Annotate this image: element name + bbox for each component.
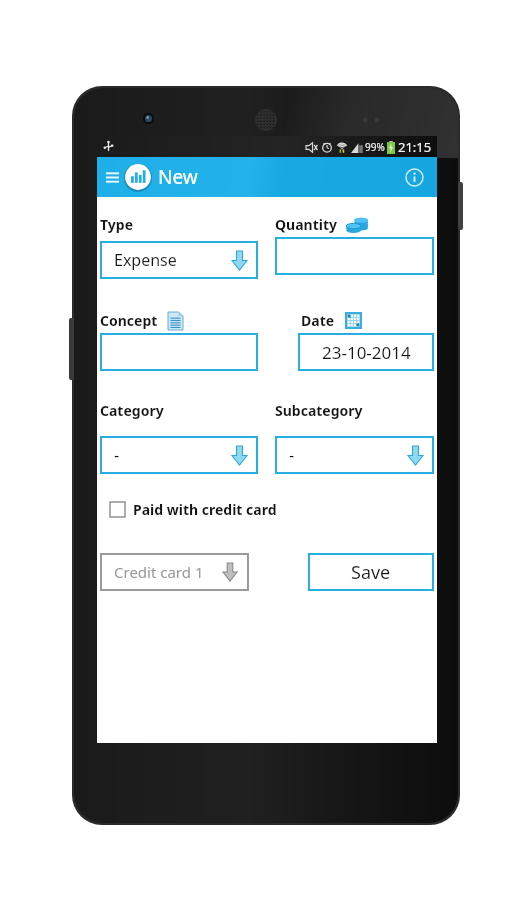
staticText: Subcategory (275, 401, 363, 420)
staticText: 23-10-2014 (322, 341, 411, 364)
staticText: Credit card 1 (114, 562, 204, 582)
button[interactable]: Credit card 1 (100, 553, 249, 591)
button[interactable]: Open navigation drawer (101, 166, 123, 188)
staticText: 99% (365, 140, 385, 154)
button[interactable]: Save (308, 553, 434, 591)
button[interactable]: - (100, 436, 258, 474)
staticText: Quantity (275, 215, 337, 234)
staticText: Save (351, 560, 391, 585)
staticText: Date (301, 311, 335, 330)
button[interactable]: Expense (100, 241, 258, 279)
staticText: New (158, 164, 198, 190)
button[interactable]: - (275, 436, 434, 474)
staticText: Concept (100, 311, 158, 330)
staticText: 21:15 (398, 138, 432, 156)
staticText: - (114, 444, 120, 466)
staticText: - (289, 444, 295, 466)
button[interactable]: 23-10-2014 (298, 333, 434, 371)
staticText: Expense (114, 249, 177, 271)
staticText: Category (100, 401, 164, 420)
staticText: Paid with credit card (133, 500, 277, 519)
button[interactable] (100, 333, 258, 371)
button[interactable]: Paid with credit card (100, 498, 281, 521)
staticText: Type (100, 215, 133, 234)
button[interactable] (275, 237, 434, 275)
button[interactable]: Information (401, 164, 427, 190)
